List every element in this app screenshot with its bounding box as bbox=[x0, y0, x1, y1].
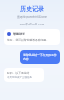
staticText: 查看你的历史对话记录 bbox=[0, 15, 64, 19]
button[interactable]: 请帮我总结一下今天的工作内容 bbox=[20, 50, 60, 64]
staticText: 历史记录 bbox=[0, 5, 64, 13]
staticText: 请帮我总结一下今天的工作内容 bbox=[23, 53, 57, 61]
staticText: 智能助手 bbox=[13, 32, 25, 36]
button[interactable]: 好的，以下是总结 bbox=[4, 68, 44, 82]
staticText: 好的，以下是总结 bbox=[7, 71, 30, 75]
staticText: 你好，我可以帮你解答各种问题。 bbox=[7, 38, 49, 42]
button[interactable]: 智能助手 bbox=[4, 29, 60, 45]
staticText: 2024年4月16日 14:32 bbox=[0, 22, 64, 25]
staticText: 今天你完成了三项任务 bbox=[7, 76, 32, 79]
